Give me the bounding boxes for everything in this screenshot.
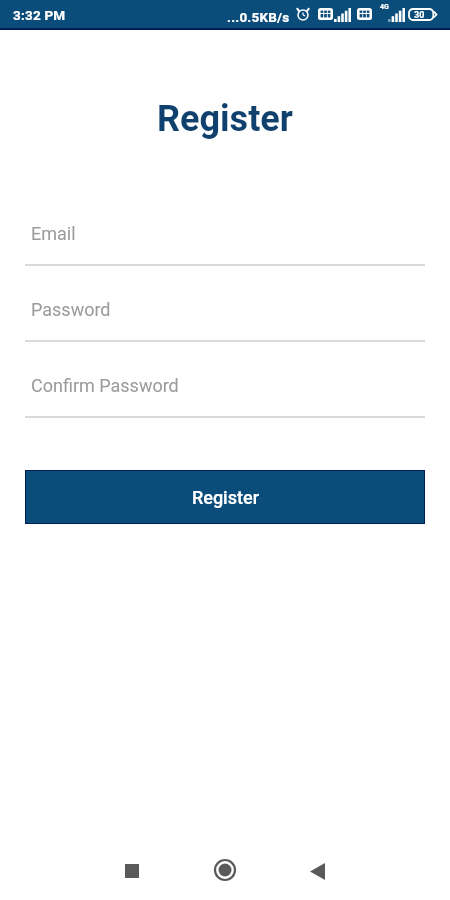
- staticText: Register: [0, 98, 450, 140]
- staticText: ...0.5KB/s: [227, 9, 290, 25]
- button[interactable]: Recents: [109, 848, 155, 894]
- button[interactable]: Register: [26, 471, 424, 523]
- button[interactable]: Password: [25, 285, 425, 342]
- button[interactable]: Email: [25, 209, 425, 266]
- button[interactable]: Confirm Password: [25, 361, 425, 418]
- staticText: Confirm Password: [31, 375, 179, 396]
- staticText: Register: [192, 487, 259, 508]
- staticText: Email: [31, 223, 76, 244]
- button[interactable]: Back: [294, 848, 340, 894]
- staticText: Password: [31, 299, 111, 320]
- staticText: 4G: [380, 3, 389, 11]
- button[interactable]: Home: [202, 847, 248, 893]
- staticText: 30: [414, 10, 425, 21]
- staticText: 3:32 PM: [13, 7, 66, 23]
